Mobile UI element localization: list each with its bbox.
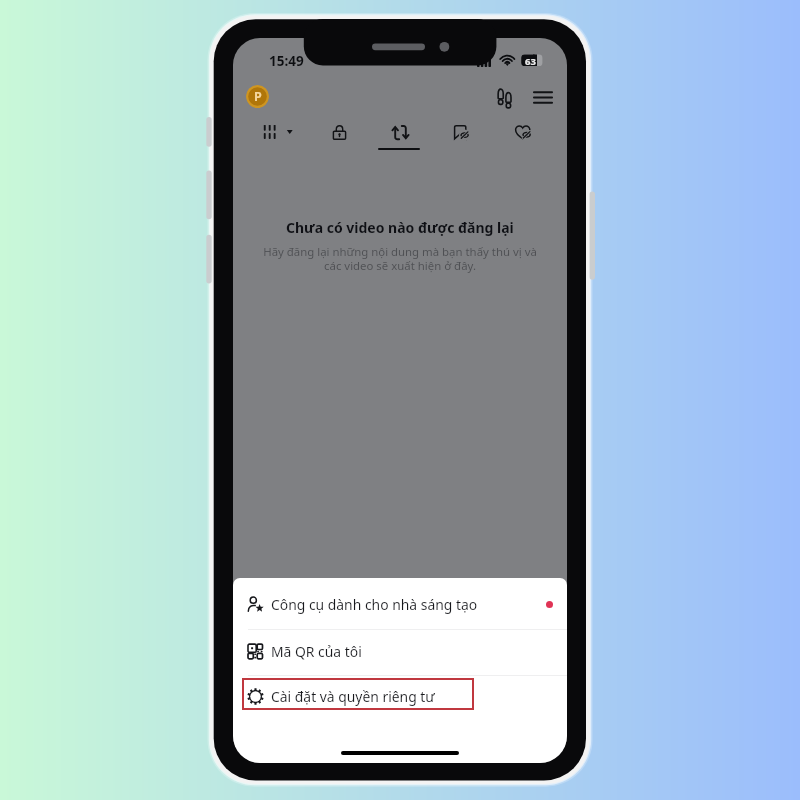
button[interactable]: Công cụ dành cho nhà sáng tạo [233, 581, 567, 627]
staticText: Chưa có video nào được đăng lại [286, 218, 514, 237]
button[interactable]: Cài đặt và quyền riêng tư [233, 673, 567, 719]
staticText: 15:49 [269, 52, 304, 70]
button[interactable]: Sort by [260, 118, 296, 148]
staticText: Hãy đăng lại những nội dung mà bạn thấy … [263, 244, 537, 273]
staticText: P [254, 88, 262, 105]
button[interactable]: Reposts [384, 116, 416, 148]
button[interactable]: Activity [489, 81, 521, 113]
staticText: Cài đặt và quyền riêng tư [271, 687, 435, 706]
button[interactable]: Menu [527, 81, 559, 113]
button[interactable]: Private videos [323, 116, 355, 148]
staticText: Công cụ dành cho nhà sáng tạo [271, 595, 478, 614]
button[interactable]: Saved videos [445, 116, 477, 148]
staticText: 63 [525, 55, 536, 68]
button[interactable]: Profile [246, 85, 269, 108]
staticText: Mã QR của tôi [271, 642, 362, 661]
button[interactable]: Liked videos [507, 116, 539, 148]
button[interactable]: Mã QR của tôi [233, 628, 567, 674]
